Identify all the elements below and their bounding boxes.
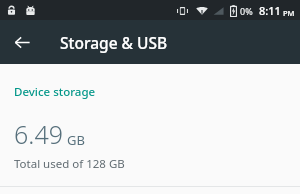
staticText: Storage & USB (60, 32, 168, 53)
staticText: 6.49 (14, 117, 63, 151)
staticText: Total used of 128 GB (14, 156, 125, 172)
staticText: PM (283, 8, 295, 18)
button[interactable]: Back (6, 26, 38, 58)
staticText: 8:11 (259, 3, 281, 18)
staticText: 0% (240, 5, 253, 17)
staticText: GB (67, 131, 85, 149)
button[interactable]: 6.49 (0, 117, 300, 151)
staticText: Device storage (14, 84, 96, 100)
